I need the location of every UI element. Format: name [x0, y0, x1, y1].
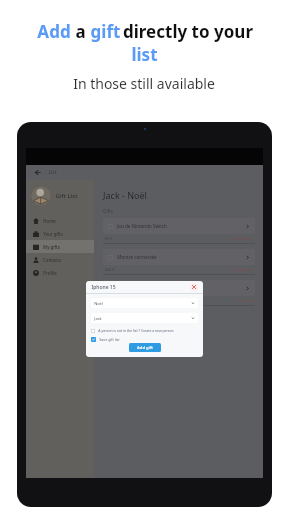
button[interactable]: Jeu de Nintendo Switch [103, 218, 255, 234]
staticText: List [48, 169, 57, 176]
button[interactable]: Back [32, 167, 43, 178]
staticText: 79 € [104, 236, 112, 241]
button[interactable]: Jack [91, 313, 198, 323]
staticText: In those still available [73, 74, 215, 93]
staticText: Your gifts [43, 231, 63, 237]
button[interactable]: Lot de 4 assiettes [103, 280, 255, 296]
button[interactable]: Contacts [26, 253, 94, 266]
button[interactable]: Your gifts [26, 227, 94, 240]
staticText: Add [35, 20, 73, 43]
staticText: Gifts [103, 208, 113, 214]
button[interactable]: Close [190, 283, 198, 291]
staticText: Profile [43, 270, 57, 276]
staticText: list [131, 43, 158, 66]
button[interactable]: A person is not in the list ? Create a n… [91, 328, 198, 333]
button[interactable]: Montre connectée [103, 249, 255, 265]
staticText: Add gift [137, 345, 153, 351]
button[interactable]: Add gift [129, 343, 161, 352]
button[interactable]: My gifts [26, 240, 94, 253]
staticText: A person is not in the list ? Create a n… [98, 328, 174, 333]
staticText: Jeu de Nintendo Switch [117, 223, 167, 229]
staticText: gift [88, 20, 123, 43]
staticText: Noël [94, 301, 103, 306]
staticText: Montre connectée [117, 254, 157, 260]
staticText: Jack [94, 316, 102, 321]
staticText: 232 € [104, 267, 115, 272]
staticText: Jack - Noël [103, 189, 147, 201]
staticText: Not available [230, 267, 253, 272]
staticText: Reserved [237, 298, 253, 303]
button[interactable]: Noël [91, 298, 198, 308]
staticText: Iphone 15 [91, 284, 116, 291]
staticText: Contacts [43, 257, 61, 263]
button[interactable]: Profile [26, 266, 94, 279]
staticText: Home [43, 218, 56, 224]
staticText: Not available [230, 236, 253, 241]
button[interactable]: Home [26, 214, 94, 227]
staticText: Save gift list [99, 337, 120, 342]
staticText: a [73, 20, 88, 43]
staticText: My gifts [43, 244, 60, 250]
button[interactable]: Save gift list [91, 337, 198, 342]
staticText: directly to your [123, 20, 253, 43]
staticText: Gift List [55, 192, 78, 200]
